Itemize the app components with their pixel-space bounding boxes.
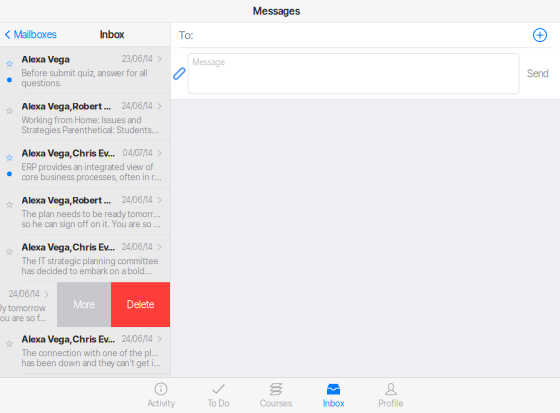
staticText: The IT strategic planning committee xyxy=(22,256,159,266)
button[interactable]: Inbox xyxy=(305,378,362,413)
staticText: Inbox xyxy=(100,29,124,41)
staticText: Alexa Vega,Chris Ev… xyxy=(22,242,115,253)
button[interactable]: Delete xyxy=(111,282,170,327)
button[interactable]: Alexa Vega,Robert … xyxy=(0,94,170,141)
staticText: More xyxy=(73,299,94,311)
staticText: Before submit quiz, answer for all xyxy=(22,68,148,78)
staticText: ERP provides an integrated view of xyxy=(22,162,154,172)
button[interactable]: Alexa Vega,Chris Ev… xyxy=(0,235,170,282)
staticText: Send xyxy=(527,68,549,80)
staticText: To Do xyxy=(207,398,229,408)
staticText: Mailboxes xyxy=(14,29,57,41)
staticText: has decided to embark on a bold… xyxy=(22,266,152,276)
button[interactable]: Alexa Vega,Chris Ev… xyxy=(0,327,170,374)
button[interactable]: Alexa Vega,Robert … xyxy=(0,188,170,235)
button[interactable]: Activity xyxy=(132,378,190,413)
staticText: 24/06/14 xyxy=(9,289,40,299)
staticText: ly tomorrow xyxy=(0,303,46,313)
staticText: questions. xyxy=(22,78,62,88)
staticText: Messages xyxy=(253,5,300,17)
button[interactable]: Courses xyxy=(247,378,305,413)
button[interactable]: Profile xyxy=(362,378,420,413)
staticText: The plan needs to be ready tomorrow xyxy=(22,209,162,219)
staticText: Profile xyxy=(378,398,403,408)
staticText: 24/06/14 xyxy=(122,242,153,252)
staticText: 04/07/14 xyxy=(123,148,153,158)
staticText: Activity xyxy=(147,398,174,408)
staticText: Delete xyxy=(127,299,154,311)
staticText: ou are so f… xyxy=(0,313,46,323)
button[interactable]: Attach xyxy=(173,67,187,81)
staticText: has been down and they can't get it… xyxy=(22,358,162,368)
button[interactable]: Alexa Vega xyxy=(0,47,170,94)
staticText: Message xyxy=(193,57,225,67)
button[interactable]: Add recipient xyxy=(531,26,549,44)
button[interactable]: Alexa Vega,Chris Ev… xyxy=(0,141,170,188)
button[interactable]: Send xyxy=(520,62,556,86)
staticText: 24/06/14 xyxy=(122,334,153,344)
staticText: 24/06/14 xyxy=(122,195,153,205)
staticText: 24/06/14 xyxy=(122,101,153,111)
staticText: The connection with one of the plants xyxy=(22,348,162,358)
staticText: Alexa Vega xyxy=(22,54,70,65)
staticText: To: xyxy=(179,28,194,42)
staticText: Inbox xyxy=(323,398,344,408)
button[interactable]: Mailboxes xyxy=(0,23,63,47)
staticText: 23/06/14 xyxy=(122,54,153,64)
staticText: Alexa Vega,Robert … xyxy=(22,101,111,112)
staticText: Strategies Parenthetical: Students… xyxy=(22,125,159,135)
button[interactable]: More xyxy=(57,282,111,327)
staticText: Alexa Vega,Robert … xyxy=(22,195,111,206)
staticText: Courses xyxy=(260,398,292,408)
staticText: so he can sign off on it. You are so f… xyxy=(22,219,162,229)
staticText: core business processes, often in re… xyxy=(22,172,162,182)
staticText: Alexa Vega,Chris Ev… xyxy=(22,148,115,159)
button[interactable]: To Do xyxy=(190,378,247,413)
staticText: Alexa Vega,Chris Ev… xyxy=(22,334,115,345)
staticText: Working from Home: Issues and xyxy=(22,115,142,125)
